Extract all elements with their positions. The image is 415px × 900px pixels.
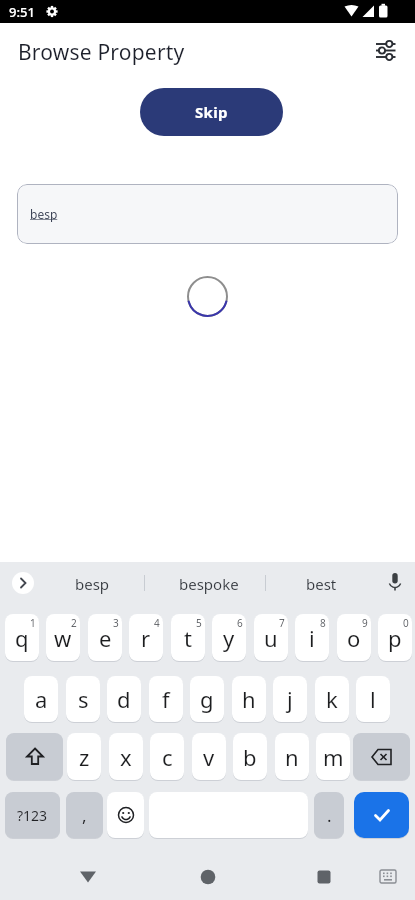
- button[interactable]: s: [66, 676, 100, 722]
- button[interactable]: [375, 40, 397, 62]
- button[interactable]: y: [212, 614, 246, 661]
- button[interactable]: p: [378, 614, 412, 661]
- staticText: c: [162, 742, 173, 772]
- button[interactable]: o: [337, 614, 371, 661]
- button[interactable]: u: [254, 614, 288, 661]
- button[interactable]: c: [150, 733, 184, 780]
- staticText: v: [203, 742, 215, 772]
- button[interactable]: w: [46, 614, 80, 661]
- staticText: 2: [71, 616, 77, 630]
- button[interactable]: x: [109, 733, 143, 780]
- button[interactable]: ,: [66, 792, 103, 838]
- button[interactable]: l: [356, 676, 390, 722]
- staticText: g: [200, 684, 214, 714]
- staticText: s: [78, 684, 89, 714]
- button[interactable]: d: [107, 676, 141, 722]
- staticText: m: [323, 742, 344, 772]
- button[interactable]: [6, 733, 63, 780]
- staticText: 6: [237, 616, 243, 630]
- staticText: z: [79, 742, 90, 772]
- button[interactable]: v: [192, 733, 226, 780]
- staticText: ,: [82, 804, 87, 827]
- button[interactable]: n: [275, 733, 309, 780]
- staticText: t: [184, 623, 192, 653]
- staticText: ?123: [17, 806, 48, 825]
- button[interactable]: best: [282, 570, 360, 597]
- staticText: h: [242, 684, 256, 714]
- staticText: 1: [30, 616, 36, 630]
- staticText: 3: [113, 616, 119, 630]
- staticText: 5: [196, 616, 202, 630]
- staticText: bespoke: [179, 574, 239, 594]
- staticText: 9: [362, 616, 368, 630]
- button[interactable]: z: [67, 733, 101, 780]
- staticText: 7: [279, 616, 285, 630]
- staticText: 8: [320, 616, 326, 630]
- button[interactable]: k: [315, 676, 349, 722]
- staticText: j: [287, 684, 293, 714]
- staticText: f: [162, 684, 170, 714]
- button[interactable]: m: [316, 733, 350, 780]
- staticText: y: [223, 623, 235, 653]
- button[interactable]: f: [149, 676, 183, 722]
- staticText: .: [327, 804, 332, 827]
- button[interactable]: h: [232, 676, 266, 722]
- staticText: x: [120, 742, 132, 772]
- button[interactable]: Skip: [140, 88, 283, 136]
- button[interactable]: e: [88, 614, 122, 661]
- button[interactable]: i: [295, 614, 329, 661]
- button[interactable]: [354, 792, 409, 838]
- staticText: p: [388, 623, 402, 653]
- button[interactable]: q: [5, 614, 39, 661]
- button[interactable]: t: [171, 614, 205, 661]
- staticText: n: [285, 742, 299, 772]
- button[interactable]: g: [190, 676, 224, 722]
- button[interactable]: ?123: [5, 792, 60, 838]
- staticText: best: [306, 574, 337, 594]
- staticText: k: [326, 684, 338, 714]
- staticText: d: [117, 684, 131, 714]
- staticText: e: [99, 623, 112, 653]
- button[interactable]: [388, 573, 402, 587]
- button[interactable]: b: [233, 733, 267, 780]
- button[interactable]: a: [24, 676, 58, 722]
- staticText: r: [141, 623, 151, 653]
- staticText: i: [309, 623, 315, 653]
- staticText: besp: [30, 206, 58, 222]
- button[interactable]: bespoke: [160, 570, 258, 597]
- staticText: Browse Property: [18, 38, 185, 67]
- button[interactable]: [107, 792, 144, 838]
- button[interactable]: [353, 733, 410, 780]
- button[interactable]: r: [129, 614, 163, 661]
- button[interactable]: besp: [52, 570, 132, 597]
- button[interactable]: [12, 572, 34, 594]
- staticText: a: [35, 684, 48, 714]
- staticText: o: [347, 623, 361, 653]
- button[interactable]: besp: [17, 184, 398, 244]
- staticText: w: [54, 623, 72, 653]
- staticText: besp: [75, 574, 110, 594]
- staticText: l: [370, 684, 376, 714]
- staticText: b: [243, 742, 257, 772]
- staticText: Skip: [195, 102, 228, 122]
- staticText: 9:51: [9, 3, 35, 21]
- staticText: 0: [403, 616, 409, 630]
- button[interactable]: j: [273, 676, 307, 722]
- staticText: u: [264, 623, 278, 653]
- button[interactable]: .: [314, 792, 344, 838]
- staticText: q: [15, 623, 29, 653]
- staticText: 4: [154, 616, 160, 630]
